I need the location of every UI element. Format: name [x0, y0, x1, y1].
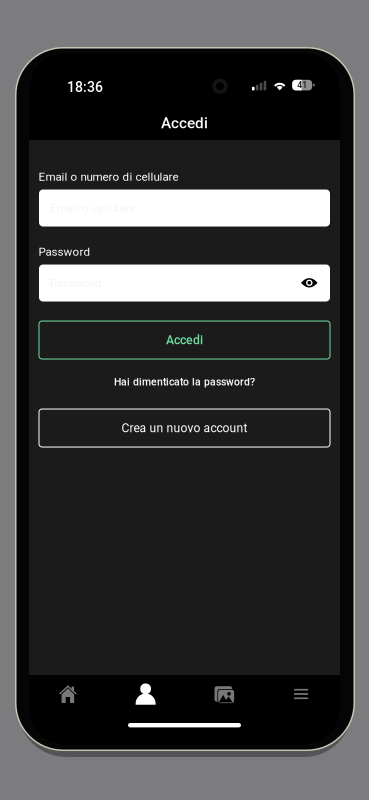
button[interactable]: Crea un nuovo account — [39, 409, 330, 447]
staticText: Hai dimenticato la password? — [114, 376, 255, 388]
staticText: Crea un nuovo account — [121, 421, 247, 435]
button[interactable]: Profilo — [107, 675, 185, 713]
button[interactable]: Hai dimenticato la password? — [39, 371, 330, 393]
staticText: Email o cellulare — [50, 201, 135, 215]
button[interactable]: Home — [29, 675, 107, 713]
staticText: Password — [38, 245, 90, 259]
button[interactable]: Galleria — [184, 675, 262, 713]
staticText: 41 — [297, 80, 307, 90]
staticText: Accedi — [166, 333, 203, 347]
button[interactable]: Accedi — [39, 321, 330, 359]
staticText: Email o numero di cellulare — [38, 170, 178, 184]
staticText: 18:36 — [67, 79, 103, 95]
staticText: Accedi — [161, 114, 208, 132]
staticText: Password — [50, 276, 102, 290]
button[interactable]: Mostra password — [295, 267, 324, 299]
button[interactable]: Menu — [262, 675, 340, 713]
